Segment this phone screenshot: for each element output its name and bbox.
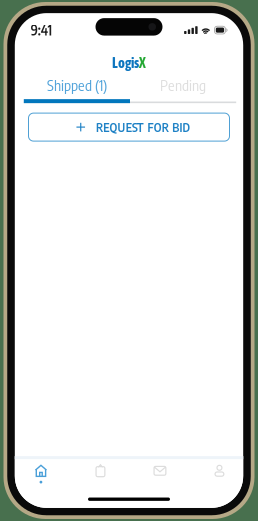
button[interactable]: Orders (71, 464, 130, 483)
button[interactable]: Profile (190, 464, 249, 483)
button[interactable]: Home (11, 464, 71, 483)
staticText: X (139, 54, 146, 71)
staticText: Pending (160, 76, 206, 94)
button[interactable]: Messages (130, 464, 190, 483)
button[interactable]: REQUEST FOR BID (28, 113, 229, 141)
button[interactable]: Pending (130, 78, 236, 103)
button[interactable]: Shipped (1) (24, 78, 130, 103)
staticText: REQUEST FOR BID (96, 120, 190, 135)
staticText: Logis (112, 54, 139, 71)
staticText: Shipped (1) (47, 76, 107, 94)
staticText: 9:41 (31, 22, 52, 38)
